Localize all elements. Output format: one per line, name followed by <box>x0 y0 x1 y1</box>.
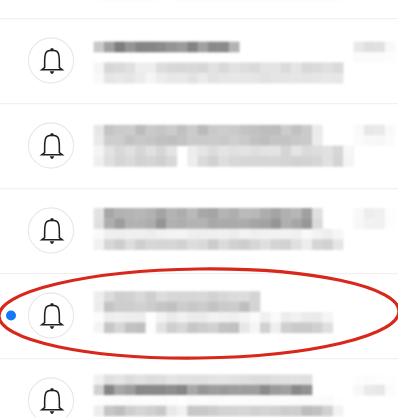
button[interactable]: Notifications <box>0 0 398 417</box>
